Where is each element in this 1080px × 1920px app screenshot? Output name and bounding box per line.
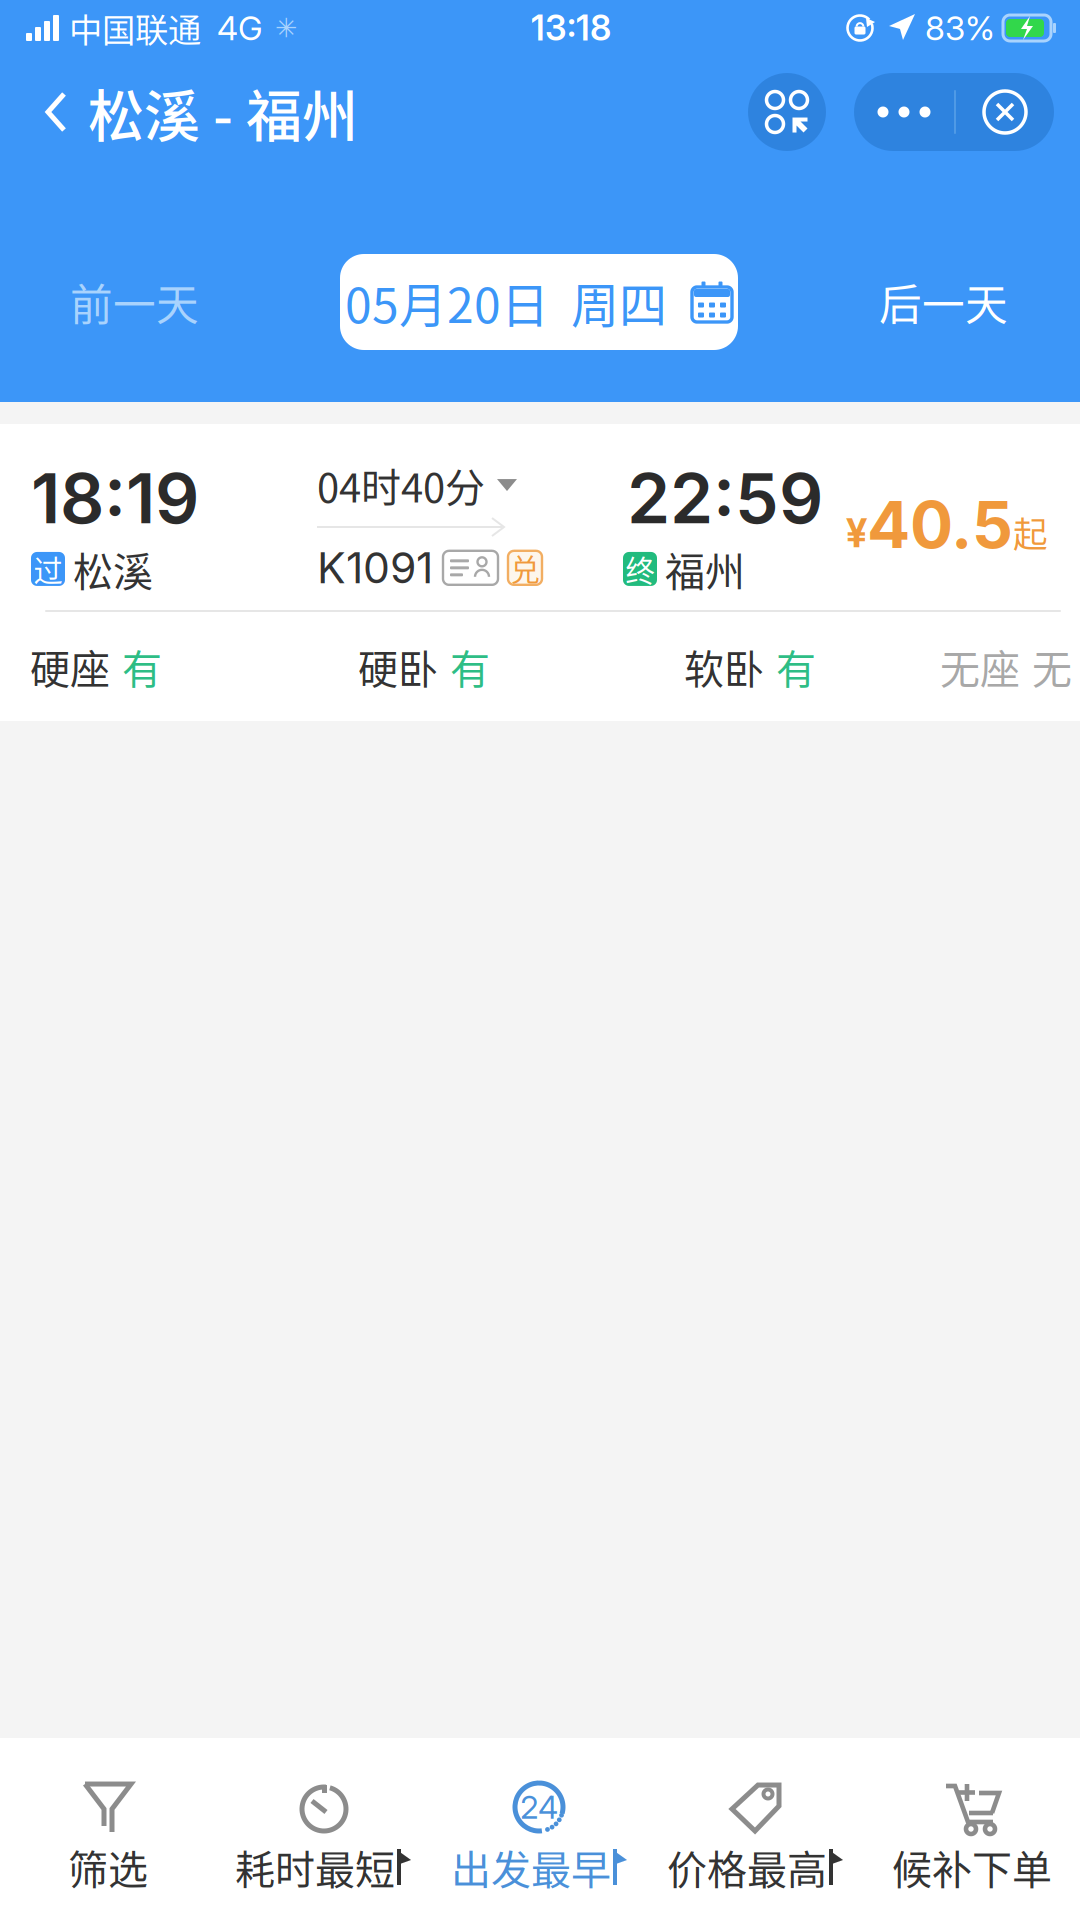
button[interactable]: 松溪 - 福州 [0,68,378,156]
staticText: 24 [520,1788,558,1826]
staticText: 40.5 [867,486,1013,563]
staticText: 过 [33,548,62,590]
button[interactable]: 价格最高 [648,1738,864,1920]
staticText: 无 [1032,637,1072,695]
staticText: 有 [122,637,162,695]
button[interactable]: 筛选 [0,1738,216,1920]
button[interactable]: 24 [432,1738,648,1920]
staticText: 4G [217,8,263,48]
staticText: 83% [925,8,995,48]
staticText: 软卧 [684,637,764,695]
staticText: 前一天 [70,271,199,333]
staticText: ✳ [275,12,297,43]
button[interactable]: 前一天 [0,254,340,350]
staticText: 有 [450,637,490,695]
staticText: 松溪 [73,540,153,598]
staticText: 无座 [940,637,1020,695]
staticText: ¥ [846,510,867,556]
staticText: 05月20日 周四 [345,267,667,337]
staticText: 出发最早 [451,1838,611,1896]
staticText: 终 [625,548,654,590]
staticText: 耗时最短 [235,1838,395,1896]
button[interactable]: 后一天 [738,254,1080,350]
staticText: 中国联通 [69,4,201,52]
staticText: 价格最高 [667,1838,827,1896]
staticText: 13:18 [531,7,611,49]
button[interactable]: More [854,73,954,151]
button[interactable]: Mini program [748,73,826,151]
button[interactable]: 05月20日 周四 [340,254,738,350]
staticText: 起 [1013,507,1048,557]
staticText: 22:59 [627,456,823,540]
staticText: 后一天 [879,271,1008,333]
staticText: 福州 [665,540,745,598]
staticText: 硬卧 [358,637,438,695]
button[interactable]: Close [956,73,1054,151]
button[interactable]: 耗时最短 [216,1738,432,1920]
staticText: 候补下单 [892,1838,1052,1896]
staticText: 硬座 [30,637,110,695]
staticText: 04时40分 [317,456,485,514]
button[interactable]: 18:19 [0,424,1080,721]
staticText: 松溪 - 福州 [88,71,358,153]
staticText: 18:19 [31,456,199,540]
button[interactable]: 候补下单 [864,1738,1080,1920]
staticText: 兑 [510,547,539,589]
staticText: K1091 [317,542,433,594]
staticText: 有 [776,637,816,695]
staticText: 筛选 [68,1838,148,1896]
